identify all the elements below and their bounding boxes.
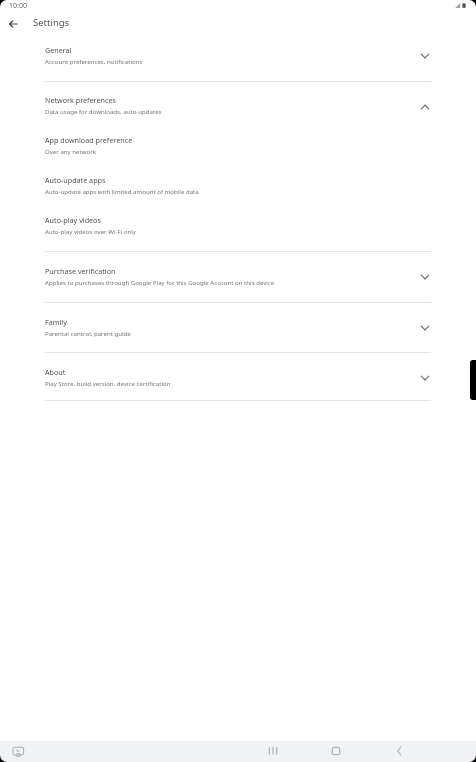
button[interactable]: Back — [388, 740, 409, 761]
button[interactable]: Network preferences — [0, 95, 476, 115]
button[interactable]: About — [0, 367, 476, 387]
staticText: Applies to purchases through Google Play… — [45, 278, 275, 286]
button[interactable]: Home — [325, 740, 346, 761]
staticText: Over any network — [45, 147, 96, 155]
staticText: About — [45, 367, 66, 377]
staticText: Data usage for downloads, auto-updates — [45, 107, 162, 115]
staticText: Account preferences, notifications — [45, 57, 143, 65]
staticText: Auto-play videos — [45, 215, 101, 225]
staticText: Play Store, build version, device certif… — [45, 379, 171, 387]
staticText: 10:00 — [9, 1, 27, 11]
staticText: Auto-update apps — [45, 175, 106, 185]
staticText: Network preferences — [45, 95, 116, 105]
staticText: Parental control, parent guide — [45, 329, 131, 337]
button[interactable]: Expand Family — [414, 317, 436, 339]
staticText: Auto-play videos over Wi-Fi only — [45, 227, 136, 235]
staticText: App download preference — [45, 135, 133, 145]
button[interactable]: Hide navigation bar — [8, 741, 28, 761]
staticText: Family — [45, 317, 67, 327]
button[interactable]: App download preference — [0, 135, 476, 155]
button[interactable]: Family — [0, 317, 476, 337]
button[interactable]: Collapse Network preferences — [414, 96, 436, 118]
button[interactable]: Auto-play videos — [0, 215, 476, 235]
button[interactable]: Recent apps — [262, 740, 283, 761]
staticText: General — [45, 45, 72, 55]
button[interactable]: Purchase verification — [0, 266, 476, 286]
staticText: Settings — [33, 16, 70, 29]
staticText: Auto-update apps with limited amount of … — [45, 187, 199, 195]
staticText: Purchase verification — [45, 266, 116, 276]
button[interactable]: Navigate up — [2, 13, 24, 35]
button[interactable]: Expand General — [414, 45, 436, 67]
button[interactable]: General — [0, 45, 476, 65]
button[interactable]: Auto-update apps — [0, 175, 476, 195]
button[interactable]: Expand About — [414, 367, 436, 389]
button[interactable]: Expand Purchase verification — [414, 266, 436, 288]
